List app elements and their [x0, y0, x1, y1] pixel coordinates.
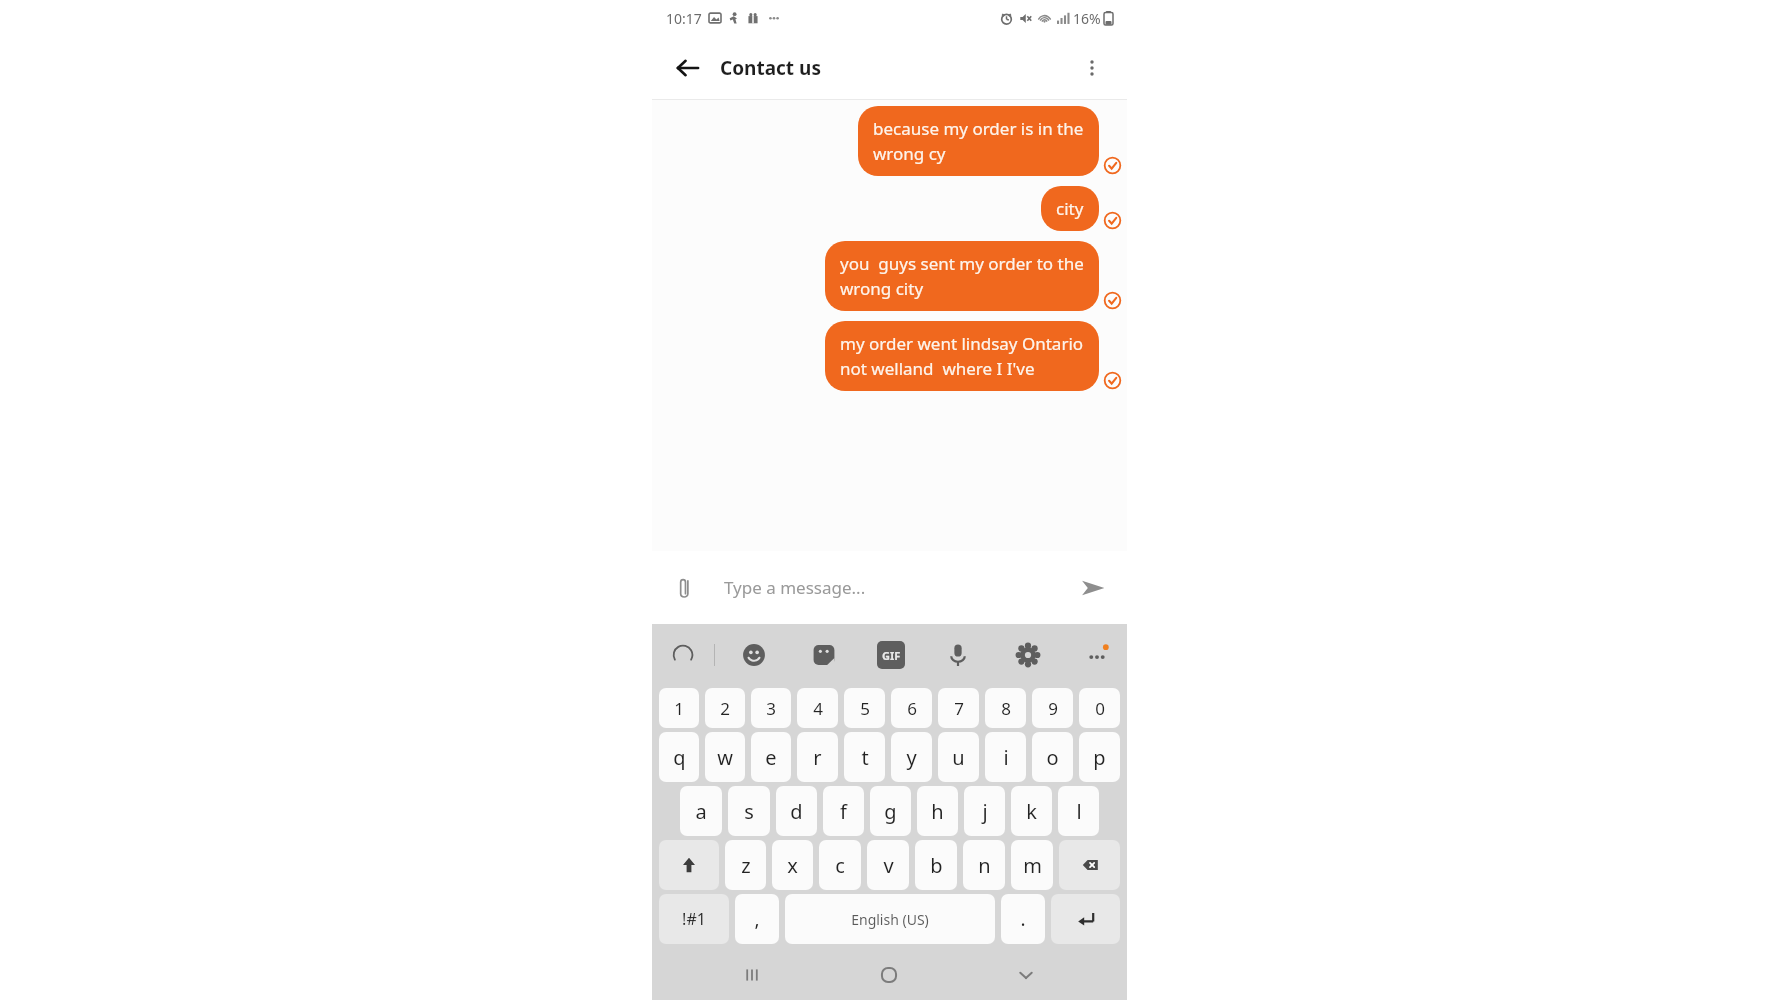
staticText: p	[1093, 744, 1106, 771]
button[interactable]: 3	[751, 688, 791, 728]
button[interactable]: z	[725, 840, 766, 890]
button[interactable]: you guys sent my order to the	[825, 241, 1099, 311]
button[interactable]: d	[776, 786, 817, 836]
button[interactable]: 5	[844, 688, 885, 728]
button[interactable]: 4	[797, 688, 838, 728]
staticText: .	[1020, 906, 1026, 932]
button[interactable]: Attach file	[664, 567, 706, 609]
button[interactable]: w	[705, 732, 745, 782]
staticText: d	[790, 798, 803, 825]
staticText: l	[1076, 798, 1082, 825]
staticText: 0	[1095, 697, 1105, 720]
button[interactable]: t	[844, 732, 885, 782]
staticText: 1	[674, 697, 684, 720]
button[interactable]: b	[915, 840, 957, 890]
button[interactable]: l	[1058, 786, 1099, 836]
button[interactable]: j	[964, 786, 1005, 836]
button[interactable]: q	[659, 732, 699, 782]
button[interactable]: 6	[891, 688, 932, 728]
staticText: m	[1023, 852, 1042, 879]
staticText: 8	[1001, 697, 1011, 720]
button[interactable]: Stickers	[807, 638, 841, 672]
button[interactable]: i	[985, 732, 1026, 782]
button[interactable]: Settings	[1011, 638, 1045, 672]
staticText: q	[673, 744, 686, 771]
staticText: e	[765, 744, 777, 771]
button[interactable]: 1	[659, 688, 699, 728]
button[interactable]: More options	[1071, 47, 1113, 89]
button[interactable]: o	[1032, 732, 1073, 782]
button[interactable]: Emoji	[737, 638, 771, 672]
button[interactable]: .	[1001, 894, 1045, 944]
button[interactable]: Shift	[659, 840, 719, 890]
button[interactable]: because my order is in the	[858, 106, 1099, 176]
button[interactable]: Back	[666, 46, 710, 90]
button[interactable]: 8	[985, 688, 1026, 728]
button[interactable]: Backspace	[1059, 840, 1120, 890]
staticText: z	[741, 852, 751, 879]
staticText: city	[1056, 197, 1084, 220]
button[interactable]: f	[823, 786, 864, 836]
staticText: o	[1046, 744, 1059, 771]
staticText: g	[884, 798, 897, 825]
button[interactable]: 0	[1079, 688, 1120, 728]
staticText: i	[1003, 744, 1009, 771]
button[interactable]: s	[728, 786, 770, 836]
staticText: English (US)	[851, 910, 929, 929]
staticText: t	[861, 744, 869, 771]
staticText: ,	[754, 906, 760, 932]
staticText: GIF	[882, 648, 901, 663]
staticText: v	[883, 852, 894, 879]
button[interactable]: n	[963, 840, 1005, 890]
button[interactable]: ,	[735, 894, 779, 944]
button[interactable]: h	[917, 786, 958, 836]
button[interactable]: p	[1079, 732, 1120, 782]
staticText: r	[813, 744, 822, 771]
button[interactable]: More	[1081, 639, 1113, 671]
button[interactable]: m	[1011, 840, 1053, 890]
button[interactable]: Type a message...	[724, 576, 1071, 599]
button[interactable]: English (US)	[785, 894, 995, 944]
button[interactable]: my order went lindsay Ontario	[825, 321, 1099, 391]
button[interactable]: u	[938, 732, 979, 782]
staticText: 3	[766, 697, 776, 720]
staticText: Type a message...	[724, 576, 866, 599]
button[interactable]: r	[797, 732, 838, 782]
button[interactable]: city	[1041, 186, 1099, 231]
button[interactable]: Enter	[1051, 894, 1120, 944]
button[interactable]: 7	[938, 688, 979, 728]
staticText: my order went lindsay Ontario	[840, 332, 1084, 355]
staticText: x	[787, 852, 798, 879]
button[interactable]: k	[1011, 786, 1052, 836]
staticText: Contact us	[720, 55, 821, 81]
button[interactable]: 2	[705, 688, 745, 728]
staticText: k	[1026, 798, 1037, 825]
staticText: 16%	[1073, 9, 1101, 28]
staticText: n	[978, 852, 991, 879]
button[interactable]: e	[751, 732, 791, 782]
staticText: a	[695, 798, 707, 825]
button[interactable]: Send	[1071, 566, 1115, 610]
button[interactable]: 9	[1032, 688, 1073, 728]
button[interactable]: y	[891, 732, 932, 782]
button[interactable]: c	[819, 840, 861, 890]
button[interactable]: Voice input	[941, 638, 975, 672]
staticText: wrong cy	[873, 142, 946, 165]
staticText: not welland where I I've	[840, 357, 1035, 380]
staticText: you guys sent my order to the	[840, 252, 1084, 275]
button[interactable]: a	[680, 786, 722, 836]
button[interactable]: g	[870, 786, 911, 836]
staticText: 4	[813, 697, 823, 720]
button[interactable]: Recents	[730, 953, 774, 997]
button[interactable]: v	[867, 840, 909, 890]
staticText: s	[744, 798, 754, 825]
staticText: !#1	[682, 908, 706, 930]
button[interactable]: Hide keyboard	[1004, 953, 1048, 997]
button[interactable]: !#1	[659, 894, 729, 944]
staticText: 7	[954, 697, 964, 720]
button[interactable]: x	[772, 840, 813, 890]
staticText: c	[835, 852, 845, 879]
button[interactable]: Home	[867, 953, 911, 997]
button[interactable]: GIF	[877, 641, 905, 669]
button[interactable]: Text mode	[666, 638, 700, 672]
